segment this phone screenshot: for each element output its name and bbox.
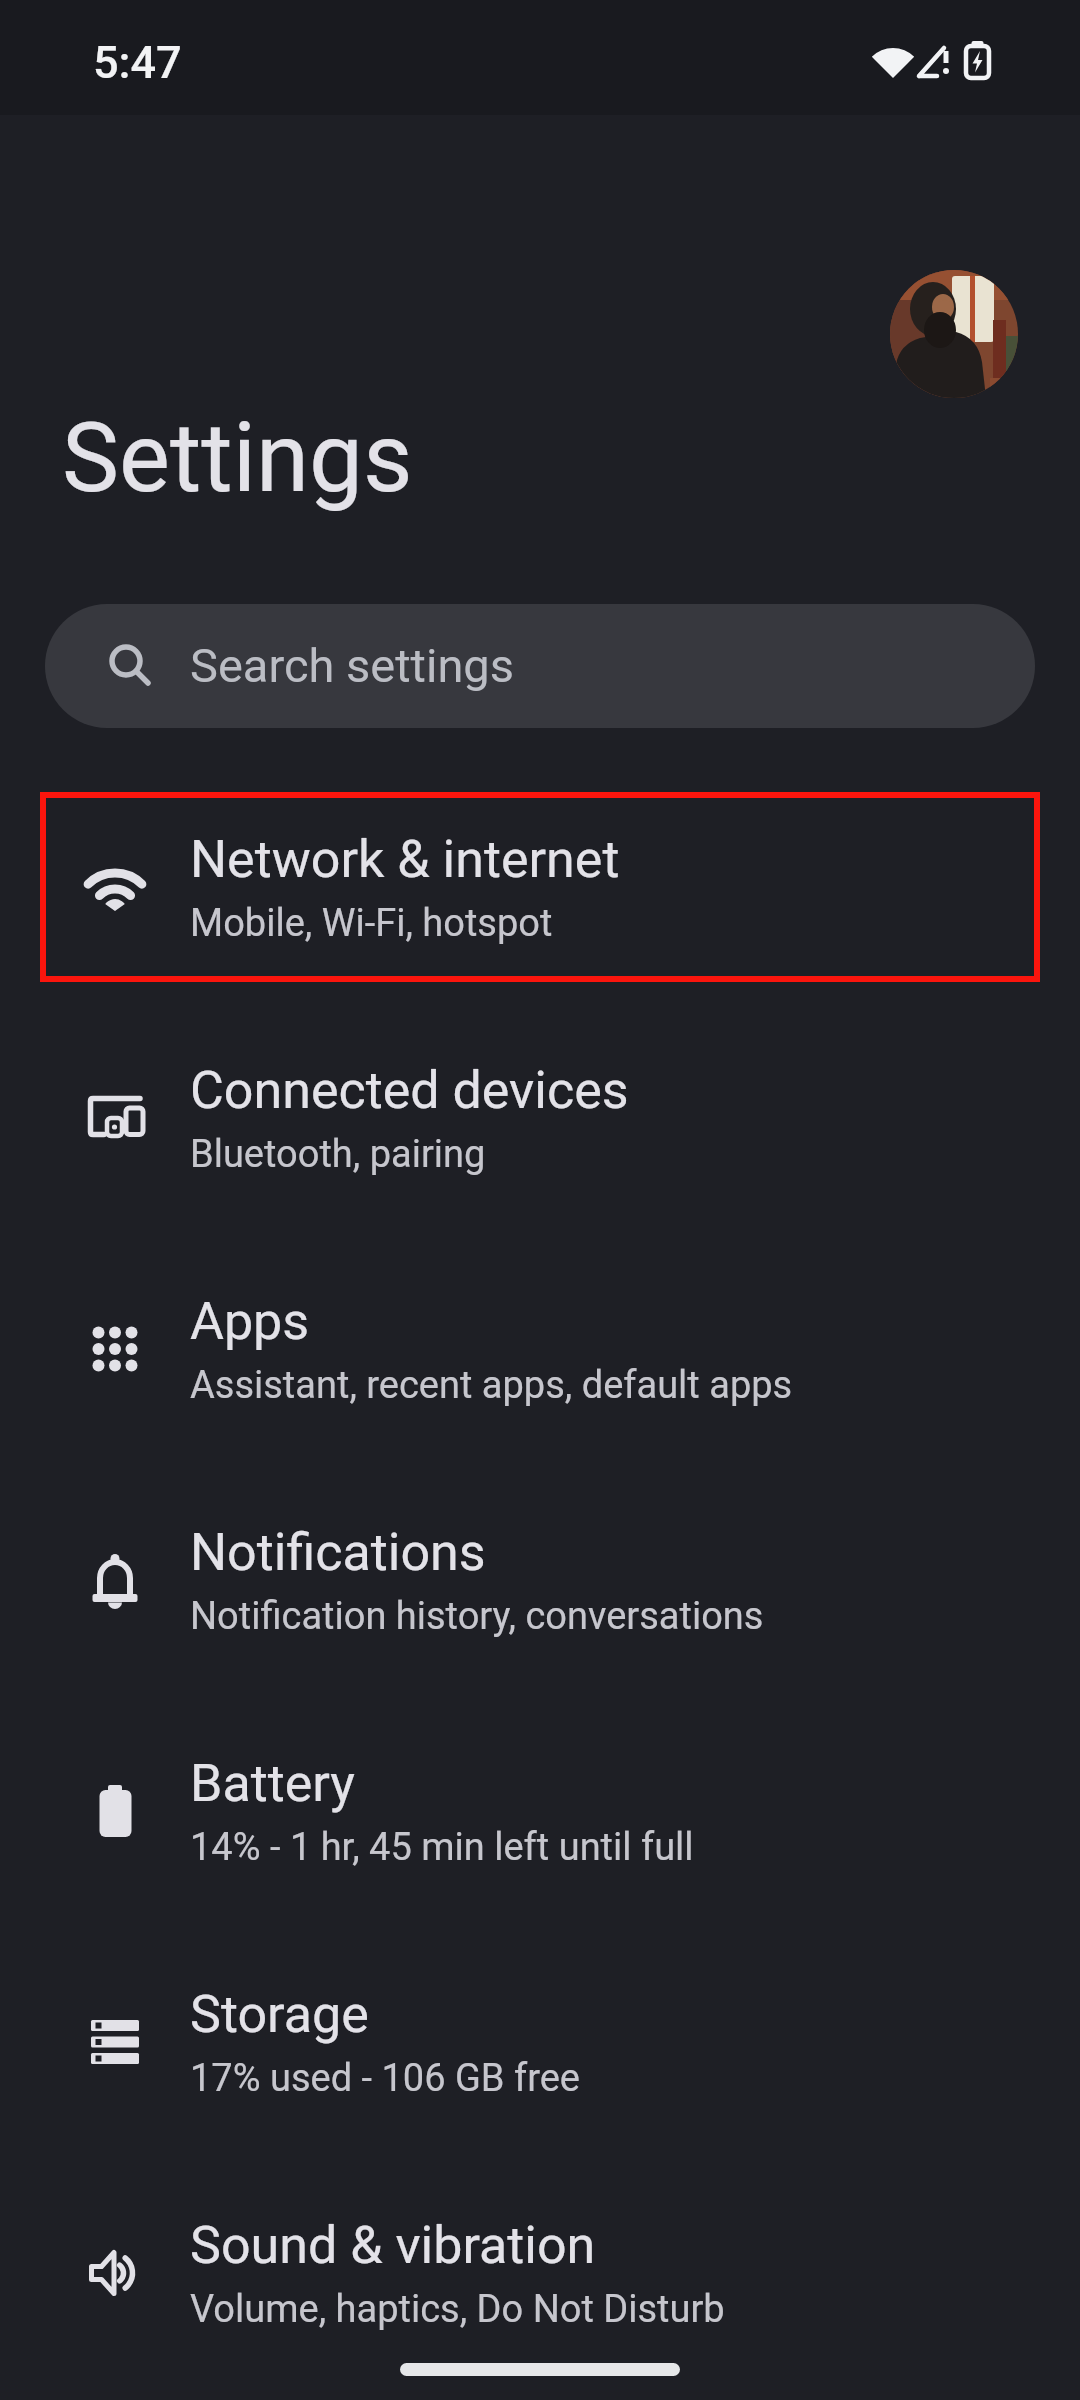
button[interactable] xyxy=(890,270,1018,398)
button[interactable]: Storage xyxy=(0,1947,1080,2137)
button[interactable]: Battery xyxy=(0,1716,1080,1906)
button[interactable]: Notifications xyxy=(0,1485,1080,1675)
staticText: 14% - 1 hr, 45 min left until full xyxy=(190,1825,694,1870)
staticText: Notification history, conversations xyxy=(190,1594,764,1639)
button[interactable]: Apps xyxy=(0,1254,1080,1444)
button[interactable]: Connected devices xyxy=(0,1023,1080,1213)
staticText: Search settings xyxy=(190,638,514,693)
staticText: Sound & vibration xyxy=(190,2215,596,2276)
staticText: Connected devices xyxy=(190,1060,629,1121)
staticText: Volume, haptics, Do Not Disturb xyxy=(190,2287,725,2332)
button[interactable]: Search settings xyxy=(45,604,1035,728)
staticText: Mobile, Wi-Fi, hotspot xyxy=(190,901,553,946)
staticText: Settings xyxy=(62,402,413,515)
button[interactable]: Network & internet xyxy=(0,792,1080,982)
staticText: Bluetooth, pairing xyxy=(190,1132,486,1177)
staticText: 17% used - 106 GB free xyxy=(190,2056,580,2101)
staticText: Notifications xyxy=(190,1522,486,1583)
staticText: Battery xyxy=(190,1753,355,1814)
staticText: Apps xyxy=(190,1291,310,1352)
staticText: 5:47 xyxy=(93,36,182,89)
button[interactable]: Sound & vibration xyxy=(0,2178,1080,2368)
staticText: Storage xyxy=(190,1984,369,2045)
staticText: Assistant, recent apps, default apps xyxy=(190,1363,793,1408)
staticText: Network & internet xyxy=(190,829,620,890)
